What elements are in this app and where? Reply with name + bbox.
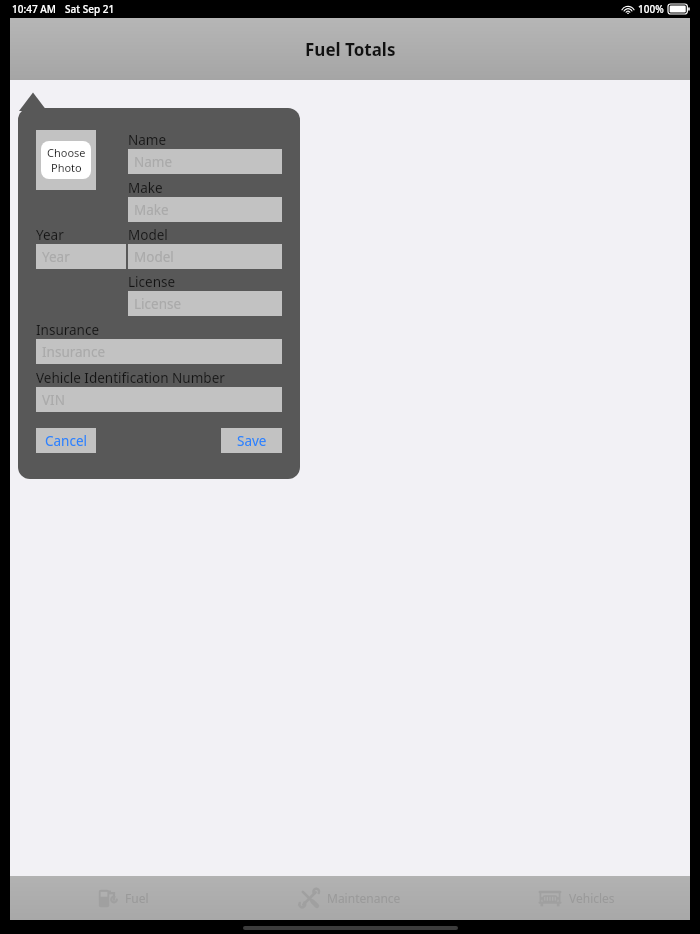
button[interactable]: Insurance: [36, 339, 282, 364]
staticText: Name: [128, 131, 167, 149]
staticText: VIN: [42, 391, 65, 409]
button[interactable]: Make: [128, 197, 282, 222]
staticText: Maintenance: [327, 890, 401, 906]
staticText: Insurance: [36, 321, 100, 339]
button[interactable]: Fuel: [10, 876, 236, 920]
staticText: Model: [134, 248, 174, 266]
button[interactable]: Choose Photo: [36, 130, 96, 190]
staticText: License: [128, 273, 176, 291]
staticText: Fuel Totals: [305, 38, 396, 61]
staticText: Year: [36, 226, 64, 244]
staticText: Name: [134, 153, 173, 171]
button[interactable]: Cancel: [36, 428, 96, 453]
staticText: Year: [42, 248, 70, 266]
staticText: Insurance: [42, 343, 106, 361]
staticText: Vehicles: [569, 890, 615, 906]
staticText: 10:47 AM: [12, 2, 56, 16]
button[interactable]: Maintenance: [236, 876, 463, 920]
staticText: Photo: [51, 160, 82, 175]
staticText: Save: [237, 432, 267, 450]
staticText: Model: [128, 226, 168, 244]
staticText: Vehicle Identification Number: [36, 369, 225, 387]
staticText: 100%: [638, 2, 664, 16]
button[interactable]: Vehicles: [463, 876, 690, 920]
button[interactable]: License: [128, 291, 282, 316]
staticText: Cancel: [45, 432, 88, 450]
staticText: Make: [134, 201, 169, 219]
button[interactable]: Model: [128, 244, 282, 269]
button[interactable]: Year: [36, 244, 126, 269]
staticText: Choose: [47, 145, 86, 160]
staticText: Make: [128, 179, 163, 197]
staticText: Fuel: [125, 890, 149, 906]
button[interactable]: Save: [221, 428, 282, 453]
staticText: Sat Sep 21: [65, 2, 115, 16]
button[interactable]: Name: [128, 149, 282, 174]
staticText: License: [134, 295, 182, 313]
